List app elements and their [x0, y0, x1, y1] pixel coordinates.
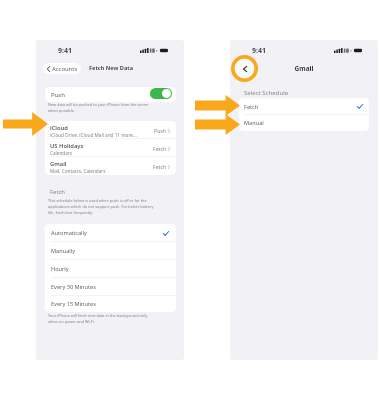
staticText: Every 30 Minutes: [51, 283, 96, 291]
button[interactable]: Back: [231, 55, 258, 82]
button[interactable]: Automatically: [45, 224, 176, 242]
staticText: Your iPhone will fetch new data in the b…: [48, 313, 148, 324]
button[interactable]: Accounts: [43, 63, 81, 74]
button[interactable]: Push: [45, 87, 176, 102]
button[interactable]: Manually: [45, 242, 176, 260]
staticText: 9:41: [252, 46, 266, 56]
button[interactable]: Every 30 Minutes: [45, 278, 176, 296]
button[interactable]: Gmail: [45, 157, 176, 175]
staticText: Fetch: [153, 163, 167, 170]
staticText: iCloud Drive, iCloud Mail and 11 more...: [50, 132, 137, 138]
button[interactable]: Manual: [239, 115, 369, 131]
staticText: Fetch New Data: [89, 64, 134, 72]
staticText: Automatically: [51, 229, 87, 237]
staticText: Mail, Contacts, Calendars: [50, 168, 106, 174]
staticText: US Holidays: [50, 142, 84, 150]
button[interactable]: US Holidays: [45, 139, 176, 157]
staticText: Fetch: [153, 145, 167, 152]
staticText: Gmail: [230, 64, 378, 73]
staticText: Hourly: [51, 265, 69, 273]
staticText: This schedule below is used when push is…: [48, 198, 154, 215]
staticText: Calendars: [50, 150, 73, 156]
button[interactable]: Push toggle, on: [150, 88, 172, 99]
staticText: 9:41: [58, 46, 72, 56]
button[interactable]: Every 15 Minutes: [45, 296, 176, 312]
staticText: Manual: [244, 119, 264, 127]
staticText: Gmail: [50, 160, 67, 168]
staticText: Accounts: [52, 65, 78, 73]
staticText: Manually: [51, 247, 76, 255]
button[interactable]: Fetch: [239, 98, 369, 115]
staticText: iCloud: [50, 124, 68, 132]
button[interactable]: Hourly: [45, 260, 176, 278]
staticText: Select Schedule: [244, 89, 289, 97]
button[interactable]: iCloud: [45, 121, 176, 139]
staticText: Fetch: [244, 103, 259, 111]
staticText: New data will be pushed to your iPhone f…: [48, 102, 149, 113]
staticText: Fetch: [50, 188, 65, 196]
staticText: Push: [154, 127, 167, 134]
staticText: Push: [51, 91, 65, 99]
staticText: Every 15 Minutes: [51, 300, 96, 308]
